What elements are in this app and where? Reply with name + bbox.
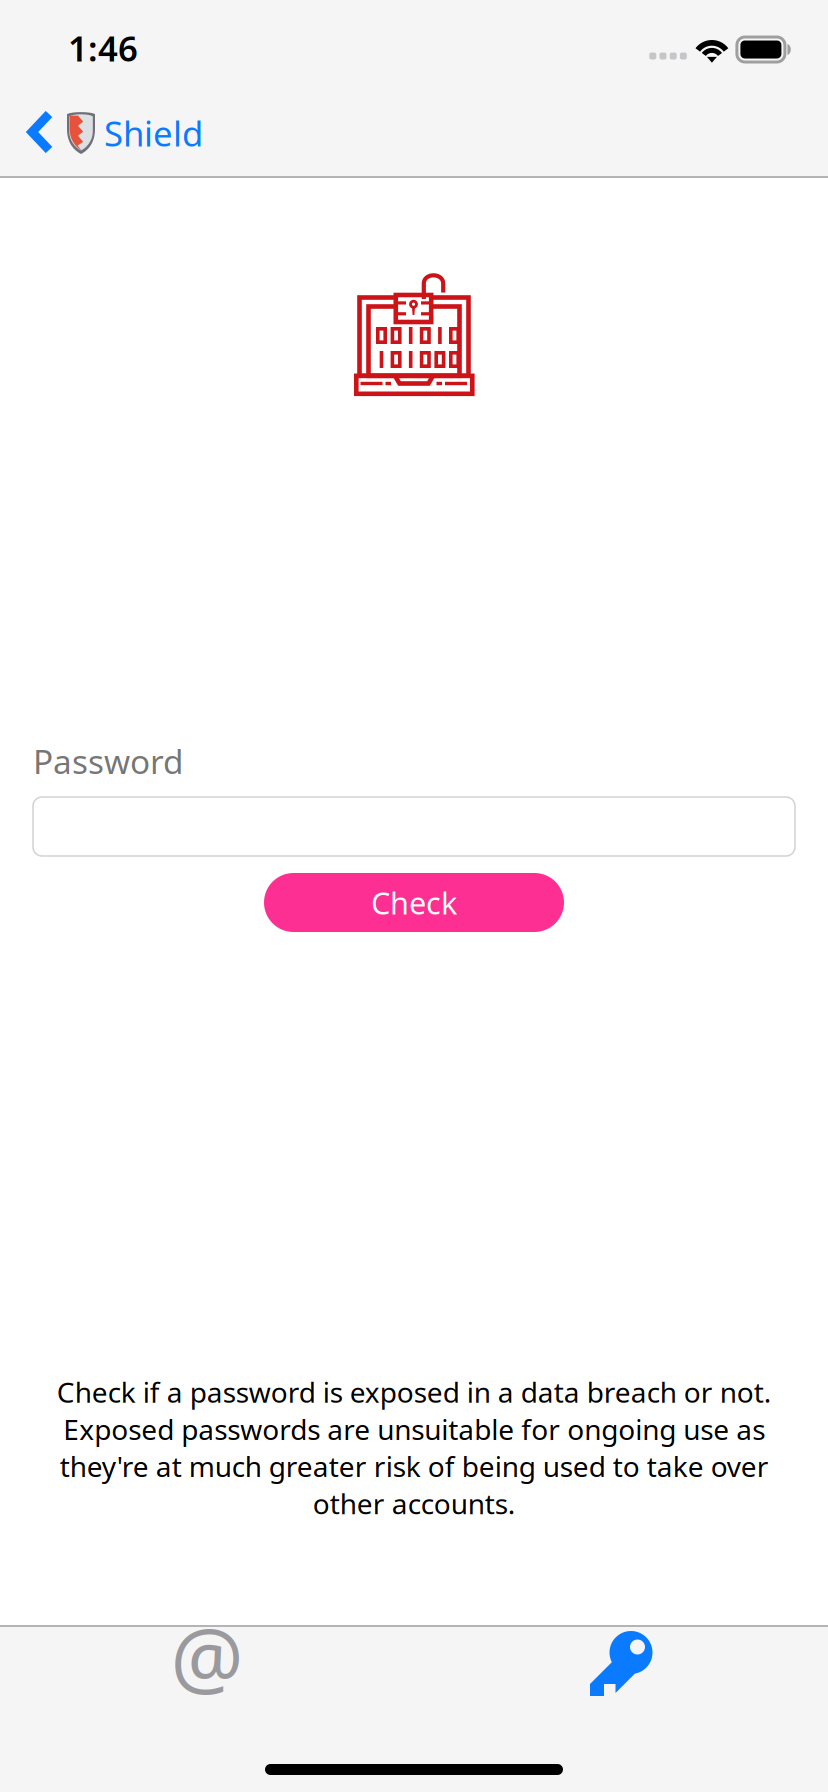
button[interactable]: Password field xyxy=(33,797,795,856)
staticText: 1:46 xyxy=(68,25,138,71)
staticText: @ xyxy=(170,1602,243,1710)
button[interactable]: Back to Shield xyxy=(0,96,223,178)
staticText: Check xyxy=(371,882,457,923)
staticText: Shield xyxy=(104,110,203,156)
staticText: Check if a password is exposed in a data… xyxy=(56,1373,771,1522)
button[interactable]: Email addresses xyxy=(0,1627,414,1700)
staticText: Password xyxy=(33,739,184,783)
button[interactable]: Check xyxy=(264,873,564,932)
button[interactable]: Passwords xyxy=(414,1627,828,1700)
